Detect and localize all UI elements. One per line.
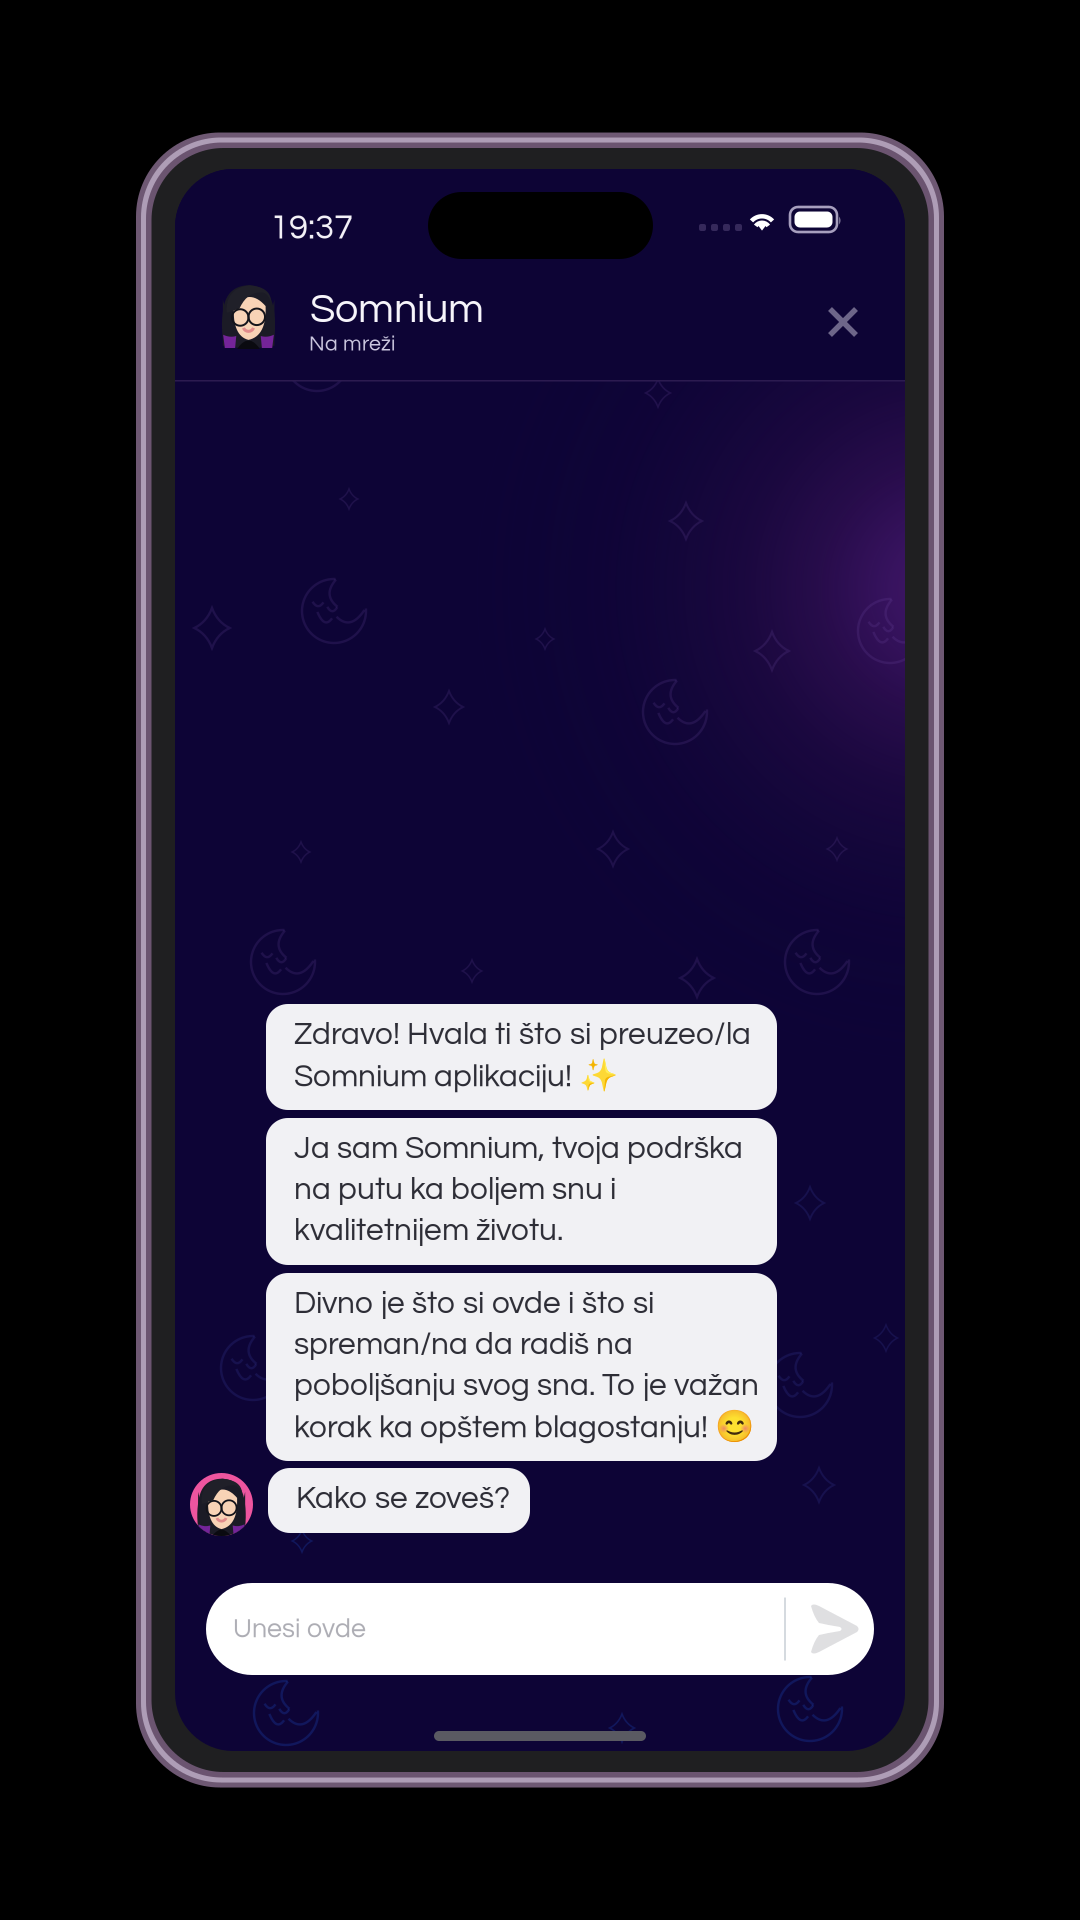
staticText: Kako se zoveš?	[296, 1482, 510, 1515]
staticText: 19:37	[270, 210, 353, 246]
staticText: Na mreži	[309, 333, 395, 355]
staticText: na putu ka boljem snu i	[294, 1173, 616, 1206]
staticText: Zdravo! Hvala ti što si preuzeo/la	[294, 1018, 751, 1051]
button[interactable]: Unesi ovde	[206, 1583, 874, 1675]
staticText: Somnium aplikaciju! ✨	[294, 1057, 618, 1094]
staticText: kvalitetnijem životu.	[294, 1214, 563, 1247]
staticText: Somnium	[310, 288, 484, 331]
staticText: Ja sam Somnium, tvoja podrška	[294, 1132, 743, 1165]
staticText: korak ka opštem blagostanju! 😊	[294, 1408, 754, 1445]
staticText: Divno je što si ovde i što si	[294, 1287, 654, 1320]
staticText: spreman/na da radiš na	[294, 1328, 633, 1361]
staticText: Unesi ovde	[233, 1615, 366, 1643]
button[interactable]: Close	[808, 287, 878, 357]
staticText: poboljšanju svog sna. To je važan	[294, 1369, 759, 1402]
